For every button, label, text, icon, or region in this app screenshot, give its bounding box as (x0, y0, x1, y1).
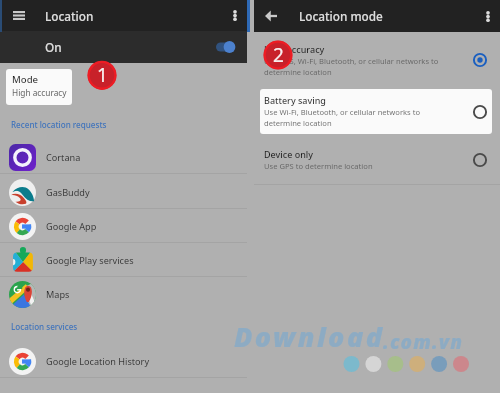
button[interactable]: Maps (0, 277, 247, 311)
button[interactable]: Battery saving (260, 89, 492, 134)
staticText: Battery saving (264, 94, 326, 106)
button[interactable]: High accuracy (254, 38, 500, 82)
staticText: Mode (12, 73, 39, 86)
staticText: 1 (97, 62, 108, 88)
button[interactable]: Google Play services (0, 243, 247, 277)
button[interactable]: GasBuddy (0, 175, 247, 209)
button[interactable]: On (0, 31, 247, 63)
button[interactable]: Cortana (0, 140, 247, 174)
staticText: High accuracy (12, 87, 67, 98)
staticText: 2 (273, 42, 284, 68)
staticText: Recent location requests (11, 119, 107, 130)
staticText: On (45, 39, 62, 55)
button[interactable]: More options (212, 0, 243, 31)
staticText: Download (234, 318, 385, 355)
staticText: Use GPS to determine location (264, 161, 373, 171)
staticText: Maps (46, 288, 70, 300)
staticText: Cortana (46, 151, 81, 163)
staticText: Use GPS, Wi-Fi, Bluetooth, or cellular n… (264, 56, 456, 77)
button[interactable]: Mode (6, 69, 72, 105)
staticText: Device only (264, 148, 313, 160)
staticText: Google Play services (46, 254, 134, 266)
staticText: GasBuddy (46, 186, 90, 198)
button[interactable]: Google App (0, 209, 247, 243)
staticText: .com.vn (383, 329, 464, 355)
staticText: Location (45, 8, 94, 24)
staticText: Google Location History (46, 355, 150, 367)
staticText: Location services (11, 321, 78, 332)
staticText: High accuracy (264, 43, 325, 55)
button[interactable]: Device only (254, 143, 500, 177)
button[interactable]: Back (254, 0, 286, 32)
staticText: Google App (46, 220, 97, 232)
button[interactable]: Menu (0, 0, 31, 31)
staticText: Location mode (299, 8, 383, 24)
button[interactable]: More options (465, 1, 496, 32)
staticText: Use Wi-Fi, Bluetooth, or cellular networ… (264, 107, 456, 128)
button[interactable]: Google Location History (0, 344, 247, 378)
